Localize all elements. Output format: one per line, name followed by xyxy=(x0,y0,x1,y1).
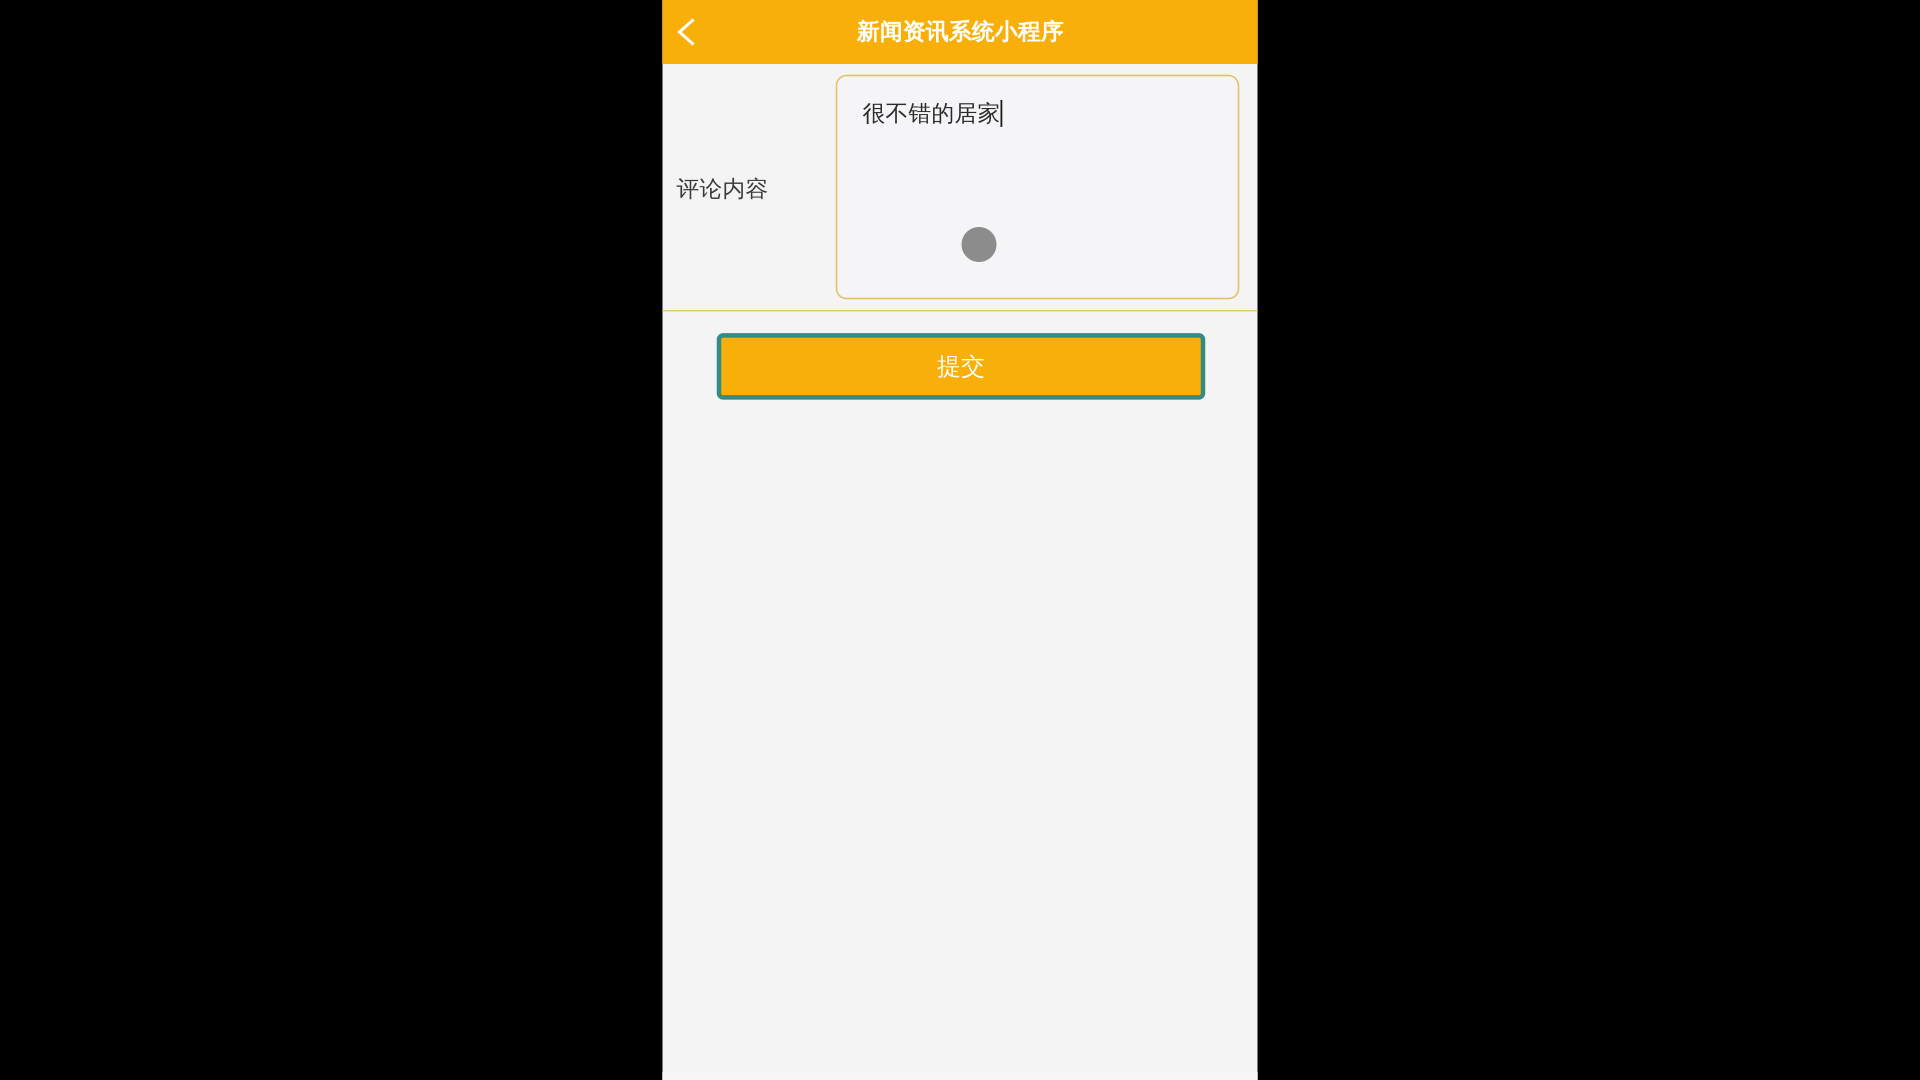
staticText: 新闻资讯系统小程序 xyxy=(856,18,1063,46)
button[interactable]: Back xyxy=(662,0,710,64)
button[interactable]: 很不错的居家 xyxy=(836,75,1238,298)
button[interactable]: 提交 xyxy=(719,335,1203,397)
staticText: 评论内容 xyxy=(676,175,768,203)
staticText: 提交 xyxy=(937,352,985,381)
staticText: 很不错的居家 xyxy=(862,99,1000,127)
